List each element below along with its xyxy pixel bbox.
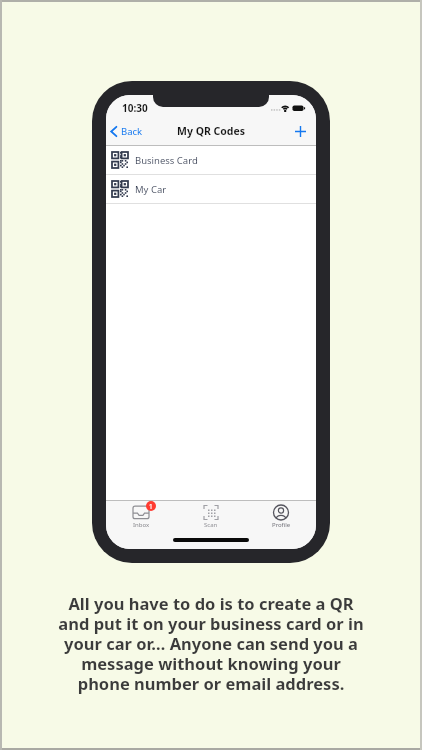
button[interactable]: My Car: [106, 175, 316, 203]
staticText: Scan: [204, 521, 218, 529]
staticText: Inbox: [133, 521, 150, 529]
staticText: Back: [121, 125, 143, 138]
button[interactable]: Business Card: [106, 146, 316, 174]
staticText: My Car: [135, 183, 167, 196]
staticText: 1: [149, 502, 153, 511]
staticText: All you have to do is to create a QR and…: [0, 592, 422, 695]
button[interactable]: [292, 123, 308, 139]
button[interactable]: Profile: [246, 505, 316, 529]
button[interactable]: 1: [106, 505, 176, 529]
staticText: Profile: [272, 521, 291, 529]
staticText: Business Card: [135, 154, 198, 167]
button[interactable]: Scan: [176, 505, 246, 529]
staticText: 10:30: [122, 101, 148, 115]
button[interactable]: Back: [110, 125, 143, 138]
staticText: My QR Codes: [177, 124, 246, 138]
